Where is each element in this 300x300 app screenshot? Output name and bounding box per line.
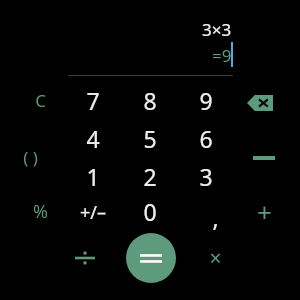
button[interactable]: Backspace [238,85,282,121]
staticText: =9 [212,44,232,67]
button[interactable]: 2 [128,157,172,195]
staticText: 5 [143,123,157,154]
button[interactable]: 4 [71,119,115,157]
staticText: +/– [80,200,106,225]
staticText: 7 [86,85,100,116]
button[interactable]: ( ) [8,138,52,176]
staticText: C [35,89,46,112]
button[interactable]: 6 [184,119,228,157]
staticText: × [209,244,222,273]
staticText: 4 [86,123,100,154]
staticText: + [257,194,272,229]
button[interactable]: 3×3 [120,16,232,42]
staticText: 9 [199,85,213,116]
button[interactable]: 5 [128,119,172,157]
staticText: , [212,202,219,233]
staticText: 3 [199,161,213,192]
button[interactable]: 3 [184,157,228,195]
staticText: 6 [199,123,213,154]
button[interactable]: C [18,81,62,119]
button[interactable]: 9 [184,81,228,119]
staticText: 8 [143,85,157,116]
button[interactable]: × [193,239,237,277]
button[interactable]: Minus [242,139,286,177]
staticText: ( ) [23,146,38,169]
button[interactable]: , [193,198,237,236]
staticText: 3×3 [202,18,232,41]
button[interactable]: 1 [71,157,115,195]
button[interactable]: + [242,192,286,230]
button[interactable]: Divide [63,239,107,277]
staticText: 1 [86,161,100,192]
button[interactable]: % [18,192,62,230]
button[interactable]: +/– [71,193,115,231]
button[interactable]: 0 [128,192,172,230]
button[interactable]: 7 [71,81,115,119]
staticText: 2 [143,161,157,192]
staticText: % [33,199,48,224]
button[interactable]: 8 [128,81,172,119]
button[interactable]: Equals [126,233,176,283]
staticText: 0 [143,196,157,227]
